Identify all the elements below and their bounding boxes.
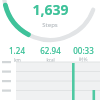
staticText: 1.24 [9,45,25,56]
staticText: km [14,57,21,63]
staticText: kcal [46,57,55,63]
staticText: 62.94 [40,45,61,56]
button[interactable]: Step progress ring [0,0,100,42]
button[interactable]: 62.94 [34,44,67,64]
staticText: 00:33 [73,45,94,56]
button[interactable]: Activity chart [0,61,100,100]
staticText: 时长 [79,57,88,63]
staticText: 1,639 [32,0,69,19]
button[interactable]: 00:33 [67,44,100,64]
button[interactable]: 1.24 [0,44,34,64]
staticText: Steps [42,21,58,29]
